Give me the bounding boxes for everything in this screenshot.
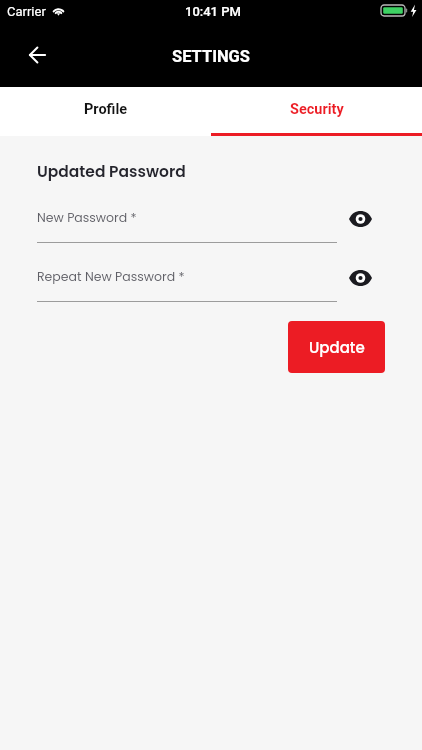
button[interactable]: Show password: [343, 260, 378, 295]
button[interactable]: Profile: [0, 87, 211, 136]
staticText: 10:41 PM: [185, 4, 241, 19]
staticText: Update: [309, 337, 365, 358]
staticText: Carrier: [7, 4, 46, 19]
button[interactable]: Security: [211, 87, 422, 136]
staticText: Profile: [84, 101, 128, 118]
button[interactable]: Show password: [343, 201, 378, 236]
button[interactable]: Back: [15, 32, 60, 77]
button[interactable]: Update: [288, 321, 385, 373]
staticText: New Password *: [37, 209, 137, 226]
staticText: Security: [290, 101, 344, 118]
staticText: Repeat New Password *: [37, 268, 185, 285]
staticText: Updated Password: [37, 161, 186, 183]
staticText: SETTINGS: [172, 47, 250, 66]
